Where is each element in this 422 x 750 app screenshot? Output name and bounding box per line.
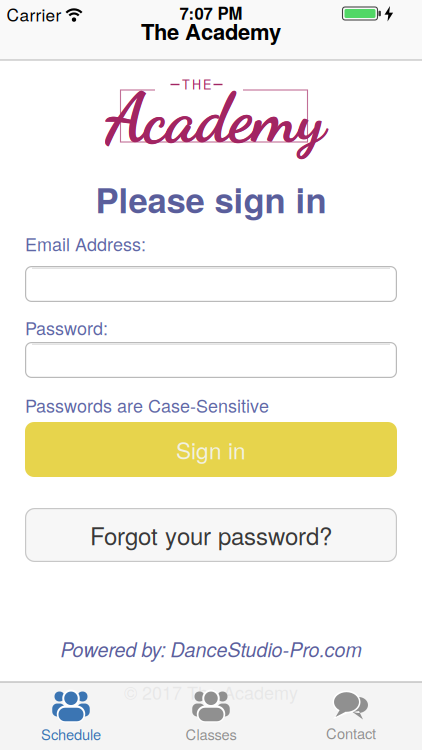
button[interactable]: Powered by: DanceStudio-Pro.com (60, 635, 361, 663)
staticText: Powered by: DanceStudio-Pro.com (60, 635, 361, 663)
button[interactable]: Schedule (1, 685, 141, 749)
staticText: Contact (326, 722, 376, 743)
staticText: Email Address: (25, 231, 146, 256)
staticText: Schedule (41, 723, 101, 744)
button[interactable]: Forgot your password? (25, 508, 397, 562)
staticText: Passwords are Case-Sensitive (25, 392, 269, 418)
staticText: Forgot your password? (90, 518, 332, 552)
staticText: Please sign in (95, 174, 326, 224)
button[interactable]: Classes (141, 685, 281, 749)
staticText: © 2017 The Academy (124, 679, 298, 705)
staticText: Academy (105, 78, 325, 159)
button[interactable]: Contact (281, 685, 421, 749)
button[interactable] (25, 342, 397, 378)
staticText: Carrier (6, 2, 61, 26)
staticText: Classes (185, 723, 236, 744)
staticText: Academy (105, 77, 325, 159)
button[interactable]: Sign in (25, 422, 397, 477)
staticText: THE (182, 75, 211, 93)
button[interactable] (25, 266, 397, 302)
staticText: The Academy (141, 15, 281, 47)
staticText: Academy (106, 77, 326, 159)
staticText: Password: (25, 315, 108, 340)
staticText: Sign in (176, 433, 246, 466)
staticText: 7:07 PM (179, 1, 242, 25)
